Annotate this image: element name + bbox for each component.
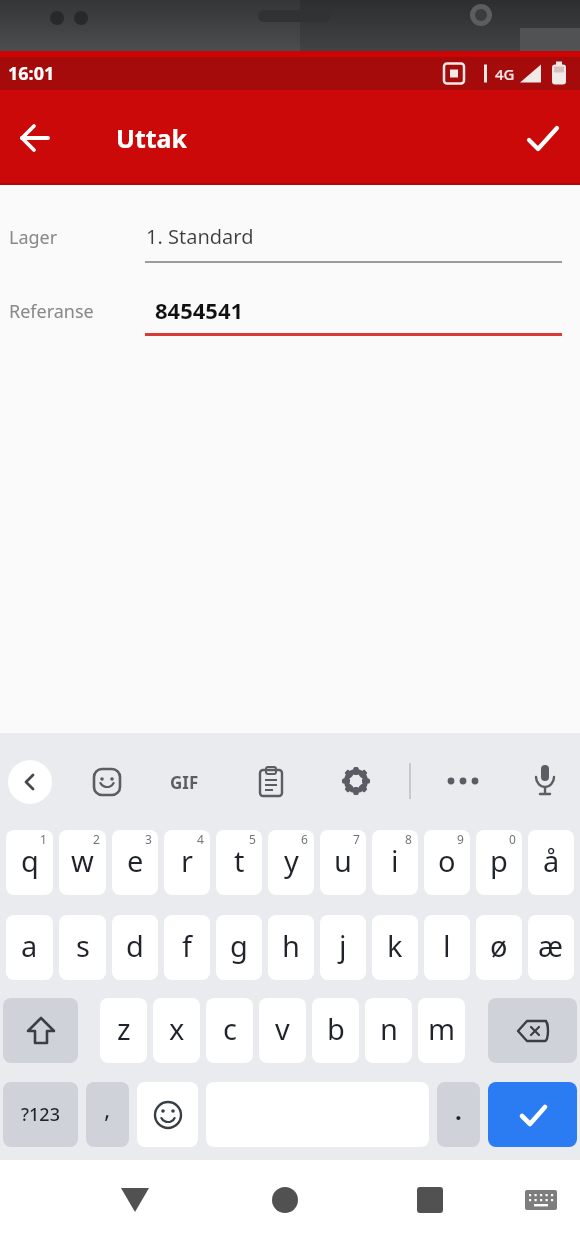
staticText: x <box>169 1009 185 1048</box>
button[interactable]: n <box>365 998 412 1063</box>
staticText: k <box>387 926 403 965</box>
button[interactable]: h <box>268 915 314 980</box>
button[interactable]: m <box>418 998 465 1063</box>
staticText: y <box>284 841 299 880</box>
staticText: 3 <box>145 831 152 847</box>
staticText: j <box>339 926 347 965</box>
staticText: 9 <box>457 831 464 847</box>
button[interactable] <box>405 1182 455 1218</box>
button[interactable] <box>488 998 577 1063</box>
staticText: m <box>428 1009 456 1048</box>
staticText: s <box>76 926 90 965</box>
staticText: w <box>71 841 94 880</box>
staticText: 7 <box>353 831 360 847</box>
staticText: 5 <box>249 831 256 847</box>
staticText: æ <box>538 926 564 965</box>
staticText: , <box>104 1092 111 1125</box>
staticText: z <box>117 1009 131 1048</box>
staticText: 8 <box>405 831 412 847</box>
button[interactable] <box>340 765 372 797</box>
staticText: å <box>543 841 560 880</box>
button[interactable]: f <box>164 915 210 980</box>
button[interactable] <box>258 766 284 797</box>
staticText: d <box>126 926 144 965</box>
staticText: Uttak <box>116 121 188 155</box>
button[interactable] <box>444 775 482 787</box>
staticText: . <box>455 1094 462 1127</box>
staticText: 16:01 <box>8 61 55 86</box>
button[interactable]: b <box>312 998 359 1063</box>
staticText: u <box>334 841 352 880</box>
staticText: q <box>21 841 39 880</box>
staticText: Lager <box>9 225 58 250</box>
staticText: p <box>490 841 508 880</box>
button[interactable] <box>92 767 122 797</box>
button[interactable]: ø <box>476 915 522 980</box>
button[interactable]: z <box>100 998 147 1063</box>
button[interactable]: s <box>59 915 106 980</box>
button[interactable]: , <box>86 1082 129 1147</box>
button[interactable]: w <box>59 830 106 895</box>
button[interactable]: ?123 <box>3 1082 78 1147</box>
button[interactable]: o <box>424 830 470 895</box>
staticText: i <box>391 841 399 880</box>
button[interactable]: e <box>112 830 158 895</box>
staticText: n <box>380 1009 398 1048</box>
staticText: g <box>230 926 248 965</box>
button[interactable]: p <box>476 830 522 895</box>
staticText: Referanse <box>9 299 94 324</box>
button[interactable]: k <box>372 915 418 980</box>
button[interactable]: y <box>268 830 314 895</box>
staticText: t <box>234 841 245 880</box>
staticText: 1. Standard <box>146 223 254 250</box>
staticText: 0 <box>509 831 516 847</box>
button[interactable]: v <box>259 998 306 1063</box>
staticText: ?123 <box>21 1102 60 1127</box>
staticText: f <box>182 926 192 965</box>
staticText: r <box>181 841 193 880</box>
button[interactable]: q <box>6 830 53 895</box>
button[interactable]: i <box>372 830 418 895</box>
button[interactable]: a <box>6 915 53 980</box>
button[interactable] <box>137 1082 198 1147</box>
staticText: a <box>21 926 38 965</box>
staticText: b <box>327 1009 345 1048</box>
staticText: c <box>223 1009 237 1048</box>
button[interactable] <box>532 763 558 799</box>
staticText: 2 <box>93 831 100 847</box>
button[interactable]: æ <box>528 915 574 980</box>
staticText: 4G <box>495 64 515 84</box>
button[interactable]: t <box>216 830 262 895</box>
staticText: GIF <box>170 771 199 794</box>
button[interactable]: x <box>153 998 200 1063</box>
button[interactable]: c <box>206 998 253 1063</box>
staticText: h <box>282 926 300 965</box>
staticText: 6 <box>301 831 308 847</box>
staticText: o <box>438 841 456 880</box>
button[interactable] <box>488 1082 577 1147</box>
button[interactable]: d <box>112 915 158 980</box>
button[interactable]: j <box>320 915 366 980</box>
button[interactable]: g <box>216 915 262 980</box>
button[interactable] <box>520 115 566 161</box>
button[interactable] <box>518 1186 564 1214</box>
button[interactable] <box>3 998 78 1063</box>
staticText: e <box>127 841 144 880</box>
staticText: v <box>275 1009 290 1048</box>
button[interactable] <box>8 760 52 804</box>
button[interactable]: . <box>437 1082 480 1147</box>
button[interactable] <box>12 115 58 161</box>
staticText: 4 <box>197 831 204 847</box>
staticText: 8454541 <box>155 295 244 325</box>
staticText: 1 <box>40 831 47 847</box>
button[interactable] <box>260 1182 310 1218</box>
staticText: l <box>443 926 451 965</box>
staticText: ø <box>490 926 508 965</box>
button[interactable]: l <box>424 915 470 980</box>
button[interactable]: r <box>164 830 210 895</box>
button[interactable]: u <box>320 830 366 895</box>
button[interactable] <box>110 1182 160 1218</box>
button[interactable]: å <box>528 830 574 895</box>
